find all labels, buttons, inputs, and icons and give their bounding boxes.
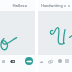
- button[interactable]: More options: [66, 3, 71, 8]
- button[interactable]: Handwriting: [41, 0, 63, 11]
- staticText: Halles: [12, 3, 25, 9]
- button[interactable]: Halles: [6, 0, 30, 11]
- button[interactable]: Undo: [62, 3, 67, 8]
- button[interactable]: Colour: [0, 58, 6, 64]
- staticText: Handwriting: [41, 3, 63, 8]
- button[interactable]: More tools: [64, 58, 70, 64]
- button[interactable]: Shapes: [47, 58, 53, 64]
- button[interactable]: More options: [23, 3, 28, 8]
- button[interactable]: Eraser: [9, 58, 15, 64]
- button[interactable]: Pen: [38, 58, 44, 64]
- button[interactable]: Colour: [57, 58, 63, 64]
- button[interactable]: Done: [25, 57, 33, 65]
